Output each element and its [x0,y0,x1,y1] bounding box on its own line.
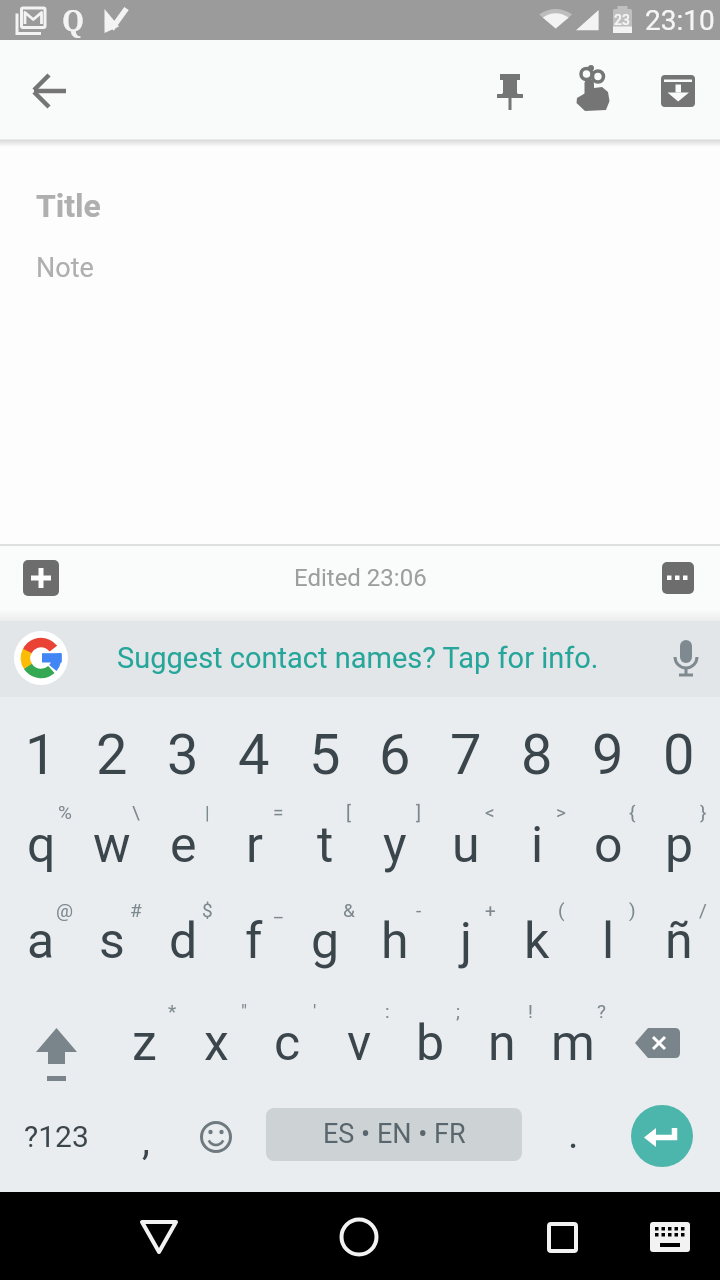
staticText: ' [313,1000,317,1022]
button[interactable]: 8 [501,715,573,795]
staticText: t [317,816,334,875]
staticText: } [700,801,707,823]
staticText: ? [597,1000,606,1022]
staticText: ñ [665,912,693,971]
staticText: 1 [25,722,57,788]
button[interactable]: j [430,896,502,986]
button[interactable] [266,1108,522,1161]
staticText: 23 [614,12,630,28]
button[interactable] [127,1207,191,1271]
button[interactable] [647,60,709,122]
staticText: Title [36,187,101,225]
staticText: / [699,899,707,921]
button[interactable]: n [466,998,538,1088]
button[interactable] [186,1107,246,1167]
staticText: . [568,1111,579,1158]
button[interactable]: q [5,800,77,890]
button[interactable]: , [121,1100,171,1180]
button[interactable]: x [180,998,252,1088]
button[interactable] [479,60,541,122]
button[interactable] [18,60,80,122]
button[interactable]: a [5,896,77,986]
button[interactable]: u [430,800,502,890]
button[interactable]: t [289,800,361,890]
button[interactable]: r [218,800,290,890]
button[interactable] [100,627,620,689]
button[interactable]: i [501,800,573,890]
button[interactable]: m [537,998,609,1088]
button[interactable]: p [643,800,715,890]
button[interactable]: k [501,896,573,986]
staticText: d [169,912,198,971]
button[interactable]: d [147,896,219,986]
staticText: Q [62,1,85,39]
staticText: v [347,1014,372,1073]
button[interactable] [327,1207,391,1271]
button[interactable]: 3 [147,715,219,795]
button[interactable] [10,627,72,689]
button[interactable]: 0 [643,715,715,795]
button[interactable]: 4 [218,715,290,795]
button[interactable] [20,1015,92,1075]
staticText: 0 [663,722,695,788]
button[interactable]: c [251,998,323,1088]
button[interactable] [656,627,716,689]
staticText: ! [528,1000,533,1022]
staticText: h [381,912,409,971]
button[interactable]: v [323,998,395,1088]
button[interactable]: 2 [76,715,148,795]
staticText: ) [629,899,636,921]
staticText: + [485,899,496,921]
staticText: * [168,1000,177,1022]
staticText: % [58,801,72,823]
staticText: 3 [167,722,199,788]
staticText: | [205,801,210,823]
staticText: z [132,1014,157,1073]
button[interactable]: o [572,800,644,890]
staticText: r [246,816,263,875]
staticText: y [383,816,407,875]
staticText: # [130,899,142,921]
button[interactable] [640,1207,700,1271]
button[interactable] [651,551,705,605]
staticText: 2 [96,722,128,788]
button[interactable] [561,60,623,122]
button[interactable] [624,1015,696,1075]
button[interactable]: s [76,896,148,986]
button[interactable]: w [76,800,148,890]
staticText: c [274,1014,301,1073]
button[interactable] [14,551,68,605]
staticText: m [551,1014,595,1073]
staticText: & [343,899,355,921]
staticText: 6 [379,722,411,788]
staticText: ] [416,801,422,823]
button[interactable]: z [108,998,180,1088]
button[interactable] [631,1105,693,1167]
button[interactable]: 9 [572,715,644,795]
button[interactable]: b [394,998,466,1088]
button[interactable]: ñ [643,896,715,986]
button[interactable] [530,1207,594,1271]
button[interactable]: 7 [430,715,502,795]
staticText: j [460,912,472,971]
button[interactable]: . [548,1094,598,1174]
button[interactable]: l [572,896,644,986]
button[interactable]: e [147,800,219,890]
staticText: - [416,899,422,921]
staticText: { [629,801,636,823]
button[interactable]: 5 [289,715,361,795]
button[interactable]: 6 [359,715,431,795]
staticText: x [204,1014,229,1073]
button[interactable]: ?123 [11,1096,101,1176]
button[interactable]: h [359,896,431,986]
staticText: @ [56,899,74,921]
button[interactable]: g [289,896,361,986]
staticText: k [524,912,550,971]
button[interactable]: 1 [5,715,77,795]
staticText: 8 [521,722,553,788]
button[interactable]: f [218,896,290,986]
staticText: 7 [450,722,482,788]
staticText: ; [456,1000,461,1022]
staticText: g [311,912,340,971]
button[interactable]: y [359,800,431,890]
